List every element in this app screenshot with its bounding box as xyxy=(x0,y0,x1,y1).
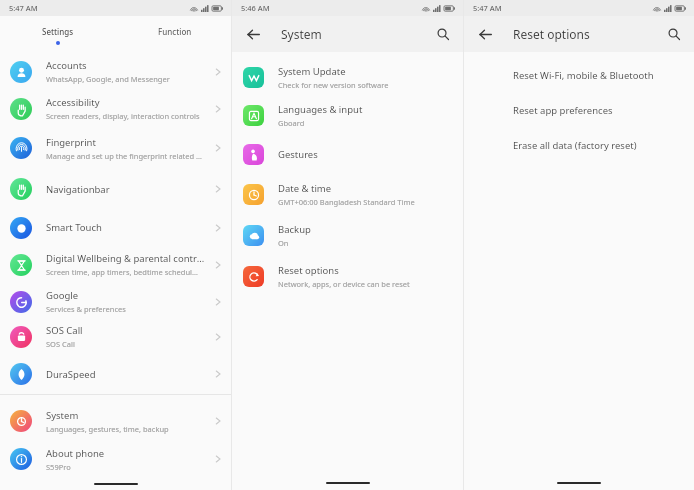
button[interactable]: Search xyxy=(664,24,684,44)
staticText: SOS Call xyxy=(46,339,75,349)
button[interactable]: Back xyxy=(475,24,495,44)
staticText: Reset options xyxy=(278,264,339,277)
button[interactable]: Google xyxy=(0,284,231,319)
staticText: Gboard xyxy=(278,118,305,128)
staticText: Languages & input xyxy=(278,103,363,116)
staticText: Erase all data (factory reset) xyxy=(513,139,637,152)
button[interactable]: Accessibility xyxy=(0,89,231,128)
staticText: S59Pro xyxy=(46,462,71,472)
staticText: Manage and set up the fingerprint relate… xyxy=(46,151,203,161)
button[interactable]: Erase all data (factory reset) xyxy=(464,128,694,163)
staticText: Digital Wellbeing & parental controls xyxy=(46,252,207,265)
staticText: System xyxy=(281,26,322,42)
button[interactable]: Smart Touch xyxy=(0,210,231,245)
button[interactable]: Reset Wi-Fi, mobile & Bluetooth xyxy=(464,58,694,93)
staticText: SOS Call xyxy=(46,324,83,337)
button[interactable]: Settings xyxy=(42,26,74,37)
button[interactable]: Search xyxy=(433,24,453,44)
button[interactable]: SOS Call xyxy=(0,319,231,354)
staticText: Screen readers, display, interaction con… xyxy=(46,111,200,121)
button[interactable]: Backup xyxy=(232,215,463,256)
staticText: About phone xyxy=(46,447,105,460)
staticText: Screen time, app timers, bedtime schedul… xyxy=(46,267,198,277)
button[interactable]: Gestures xyxy=(232,134,463,174)
staticText: GMT+06:00 Bangladesh Standard Time xyxy=(278,197,415,207)
staticText: System xyxy=(46,409,79,422)
staticText: Accessibility xyxy=(46,96,100,109)
staticText: 5:47 AM xyxy=(9,3,38,13)
staticText: DuraSpeed xyxy=(46,368,96,381)
staticText: Smart Touch xyxy=(46,221,102,234)
button[interactable]: System Update xyxy=(232,58,463,96)
button[interactable]: Languages & input xyxy=(232,96,463,134)
staticText: On xyxy=(278,238,289,248)
staticText: 5:46 AM xyxy=(241,3,270,13)
staticText: Reset options xyxy=(513,26,590,42)
button[interactable]: About phone xyxy=(0,440,231,478)
staticText: 5:47 AM xyxy=(473,3,502,13)
button[interactable]: System xyxy=(0,402,231,440)
staticText: Date & time xyxy=(278,182,332,195)
button[interactable]: Navigationbar xyxy=(0,168,231,210)
staticText: System Update xyxy=(278,65,346,78)
staticText: Backup xyxy=(278,223,311,236)
button[interactable]: Function xyxy=(158,26,192,37)
staticText: Google xyxy=(46,289,79,302)
button[interactable]: Accounts xyxy=(0,54,231,89)
button[interactable]: Digital Wellbeing & parental controls xyxy=(0,245,231,284)
staticText: WhatsApp, Google, and Messenger xyxy=(46,74,170,84)
button[interactable]: DuraSpeed xyxy=(0,354,231,394)
staticText: Reset app preferences xyxy=(513,104,613,117)
staticText: Reset Wi-Fi, mobile & Bluetooth xyxy=(513,69,654,82)
button[interactable]: Fingerprint xyxy=(0,128,231,168)
staticText: Fingerprint xyxy=(46,136,96,149)
staticText: Gestures xyxy=(278,148,318,161)
staticText: Accounts xyxy=(46,59,87,72)
staticText: Navigationbar xyxy=(46,183,110,196)
button[interactable]: Back xyxy=(243,24,263,44)
staticText: Languages, gestures, time, backup xyxy=(46,424,169,434)
staticText: Check for new version software xyxy=(278,80,389,90)
button[interactable]: Reset app preferences xyxy=(464,93,694,128)
staticText: Services & preferences xyxy=(46,304,126,314)
staticText: Network, apps, or device can be reset xyxy=(278,279,410,289)
button[interactable]: Date & time xyxy=(232,174,463,215)
button[interactable]: Reset options xyxy=(232,256,463,297)
